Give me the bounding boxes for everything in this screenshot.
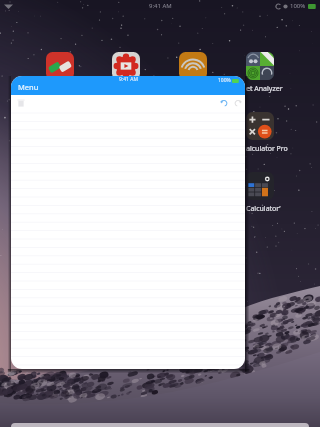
staticText: 9:41 AM	[119, 76, 138, 83]
staticText: Calculatorʼ	[246, 204, 281, 214]
staticText: Menu	[18, 82, 39, 92]
staticText: alculator Pro	[246, 144, 288, 154]
button[interactable]: alculator Pro	[246, 112, 306, 154]
staticText: 100%	[218, 77, 231, 84]
staticText: 100%	[290, 2, 306, 10]
button[interactable]: et Analyzer	[246, 52, 306, 94]
button[interactable]: Delete	[15, 97, 27, 109]
other: Wi-Fi	[4, 3, 13, 9]
button[interactable]: Background window	[11, 423, 309, 427]
button[interactable]: Redo	[232, 97, 244, 109]
button[interactable]: Calculatorʼ	[246, 172, 306, 214]
button[interactable]: Device Control	[112, 52, 140, 80]
button[interactable]: Money Manager	[46, 52, 74, 80]
staticText: 9:41 AM	[149, 2, 172, 10]
staticText: et Analyzer	[246, 84, 283, 94]
button[interactable]: Undo	[218, 97, 230, 109]
button[interactable]: Audible	[179, 52, 207, 80]
